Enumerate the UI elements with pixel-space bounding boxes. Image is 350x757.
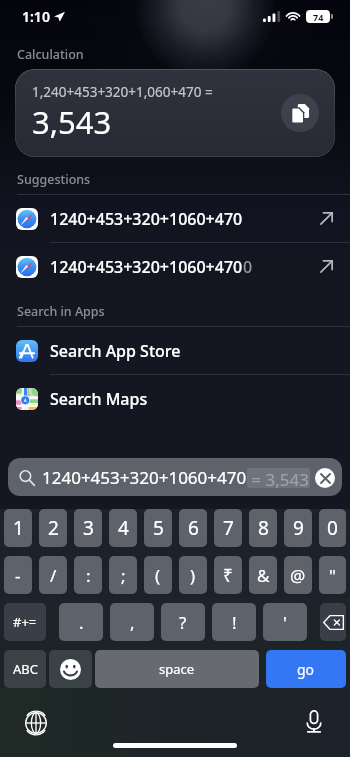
button[interactable]: 6: [179, 509, 207, 547]
button[interactable]: ': [263, 603, 307, 641]
button[interactable]: @: [284, 556, 312, 594]
button[interactable]: :: [74, 556, 102, 594]
staticText: (: [155, 564, 161, 587]
staticText: &: [257, 564, 270, 587]
button[interactable]: Clear text: [315, 468, 335, 488]
button[interactable]: -: [4, 556, 32, 594]
staticText: Suggestions: [17, 171, 91, 188]
staticText: 3: [83, 515, 94, 541]
staticText: 1: [13, 515, 24, 541]
staticText: Search Maps: [50, 388, 148, 410]
button[interactable]: Dictation: [302, 710, 326, 734]
button[interactable]: 2: [39, 509, 67, 547]
button[interactable]: ;: [109, 556, 137, 594]
staticText: -: [15, 564, 21, 587]
staticText: ): [190, 564, 196, 587]
button[interactable]: 9: [284, 509, 312, 547]
button[interactable]: 4: [109, 509, 137, 547]
staticText: 6: [188, 515, 199, 541]
button[interactable]: 1: [4, 509, 32, 547]
button[interactable]: Emoji: [49, 650, 92, 688]
staticText: 8: [258, 515, 269, 541]
button[interactable]: space: [95, 650, 259, 688]
button[interactable]: ₹: [214, 556, 242, 594]
staticText: ₹: [223, 564, 233, 587]
staticText: ,: [130, 611, 135, 634]
button[interactable]: 0: [319, 509, 346, 547]
staticText: 9: [293, 515, 304, 541]
staticText: 1240+453+320+1060+470: [50, 208, 243, 230]
button[interactable]: ?: [161, 603, 205, 641]
button[interactable]: !: [212, 603, 256, 641]
staticText: Search in Apps: [17, 303, 105, 320]
staticText: ?: [179, 611, 187, 634]
staticText: #+=: [13, 613, 37, 631]
button[interactable]: &: [249, 556, 277, 594]
button[interactable]: .: [59, 603, 103, 641]
staticText: 4: [118, 515, 129, 541]
button[interactable]: 1240+453+320+1060+470: [0, 195, 350, 243]
button[interactable]: Search Maps: [0, 375, 350, 422]
button[interactable]: Change keyboard: [24, 711, 47, 734]
staticText: :: [86, 564, 91, 587]
button[interactable]: 1240+453+320+1060+470: [8, 458, 342, 496]
staticText: 1:10: [22, 7, 50, 26]
staticText: !: [232, 611, 237, 634]
staticText: 0: [327, 515, 338, 541]
button[interactable]: ): [179, 556, 207, 594]
button[interactable]: 1240+453+320+1060+470: [0, 243, 350, 290]
button[interactable]: Copy: [281, 94, 319, 132]
button[interactable]: go: [266, 650, 346, 688]
staticText: ABC: [13, 660, 38, 678]
staticText: Calculation: [17, 46, 84, 63]
staticText: 3,543: [32, 101, 112, 143]
staticText: 7: [223, 515, 234, 541]
staticText: 1240+453+320+1060+470: [42, 466, 247, 489]
staticText: Search App Store: [50, 340, 181, 362]
button[interactable]: Backspace: [320, 603, 346, 641]
button[interactable]: 7: [214, 509, 242, 547]
button[interactable]: /: [39, 556, 67, 594]
staticText: 0: [243, 256, 253, 278]
button[interactable]: (: [144, 556, 172, 594]
staticText: ': [283, 611, 287, 634]
button[interactable]: 5: [144, 509, 172, 547]
staticText: go: [297, 660, 315, 679]
staticText: /: [50, 564, 57, 587]
staticText: .: [79, 611, 84, 634]
staticText: 1,240+453+320+1,060+470 =: [32, 83, 213, 101]
button[interactable]: 1,240+453+320+1,060+470 =: [15, 69, 335, 157]
staticText: 2: [48, 515, 59, 541]
button[interactable]: 3: [74, 509, 102, 547]
button[interactable]: #+=: [4, 603, 46, 641]
staticText: 5: [153, 515, 164, 541]
staticText: space: [159, 660, 195, 678]
button[interactable]: ,: [110, 603, 154, 641]
staticText: ": [329, 564, 336, 587]
staticText: @: [290, 564, 306, 587]
staticText: = 3,543: [247, 468, 310, 488]
staticText: 74: [313, 11, 324, 23]
button[interactable]: ": [319, 556, 346, 594]
button[interactable]: ABC: [4, 650, 46, 688]
staticText: 1240+453+320+1060+470: [50, 256, 243, 278]
button[interactable]: Search App Store: [0, 327, 350, 375]
staticText: ;: [121, 564, 126, 587]
button[interactable]: 8: [249, 509, 277, 547]
